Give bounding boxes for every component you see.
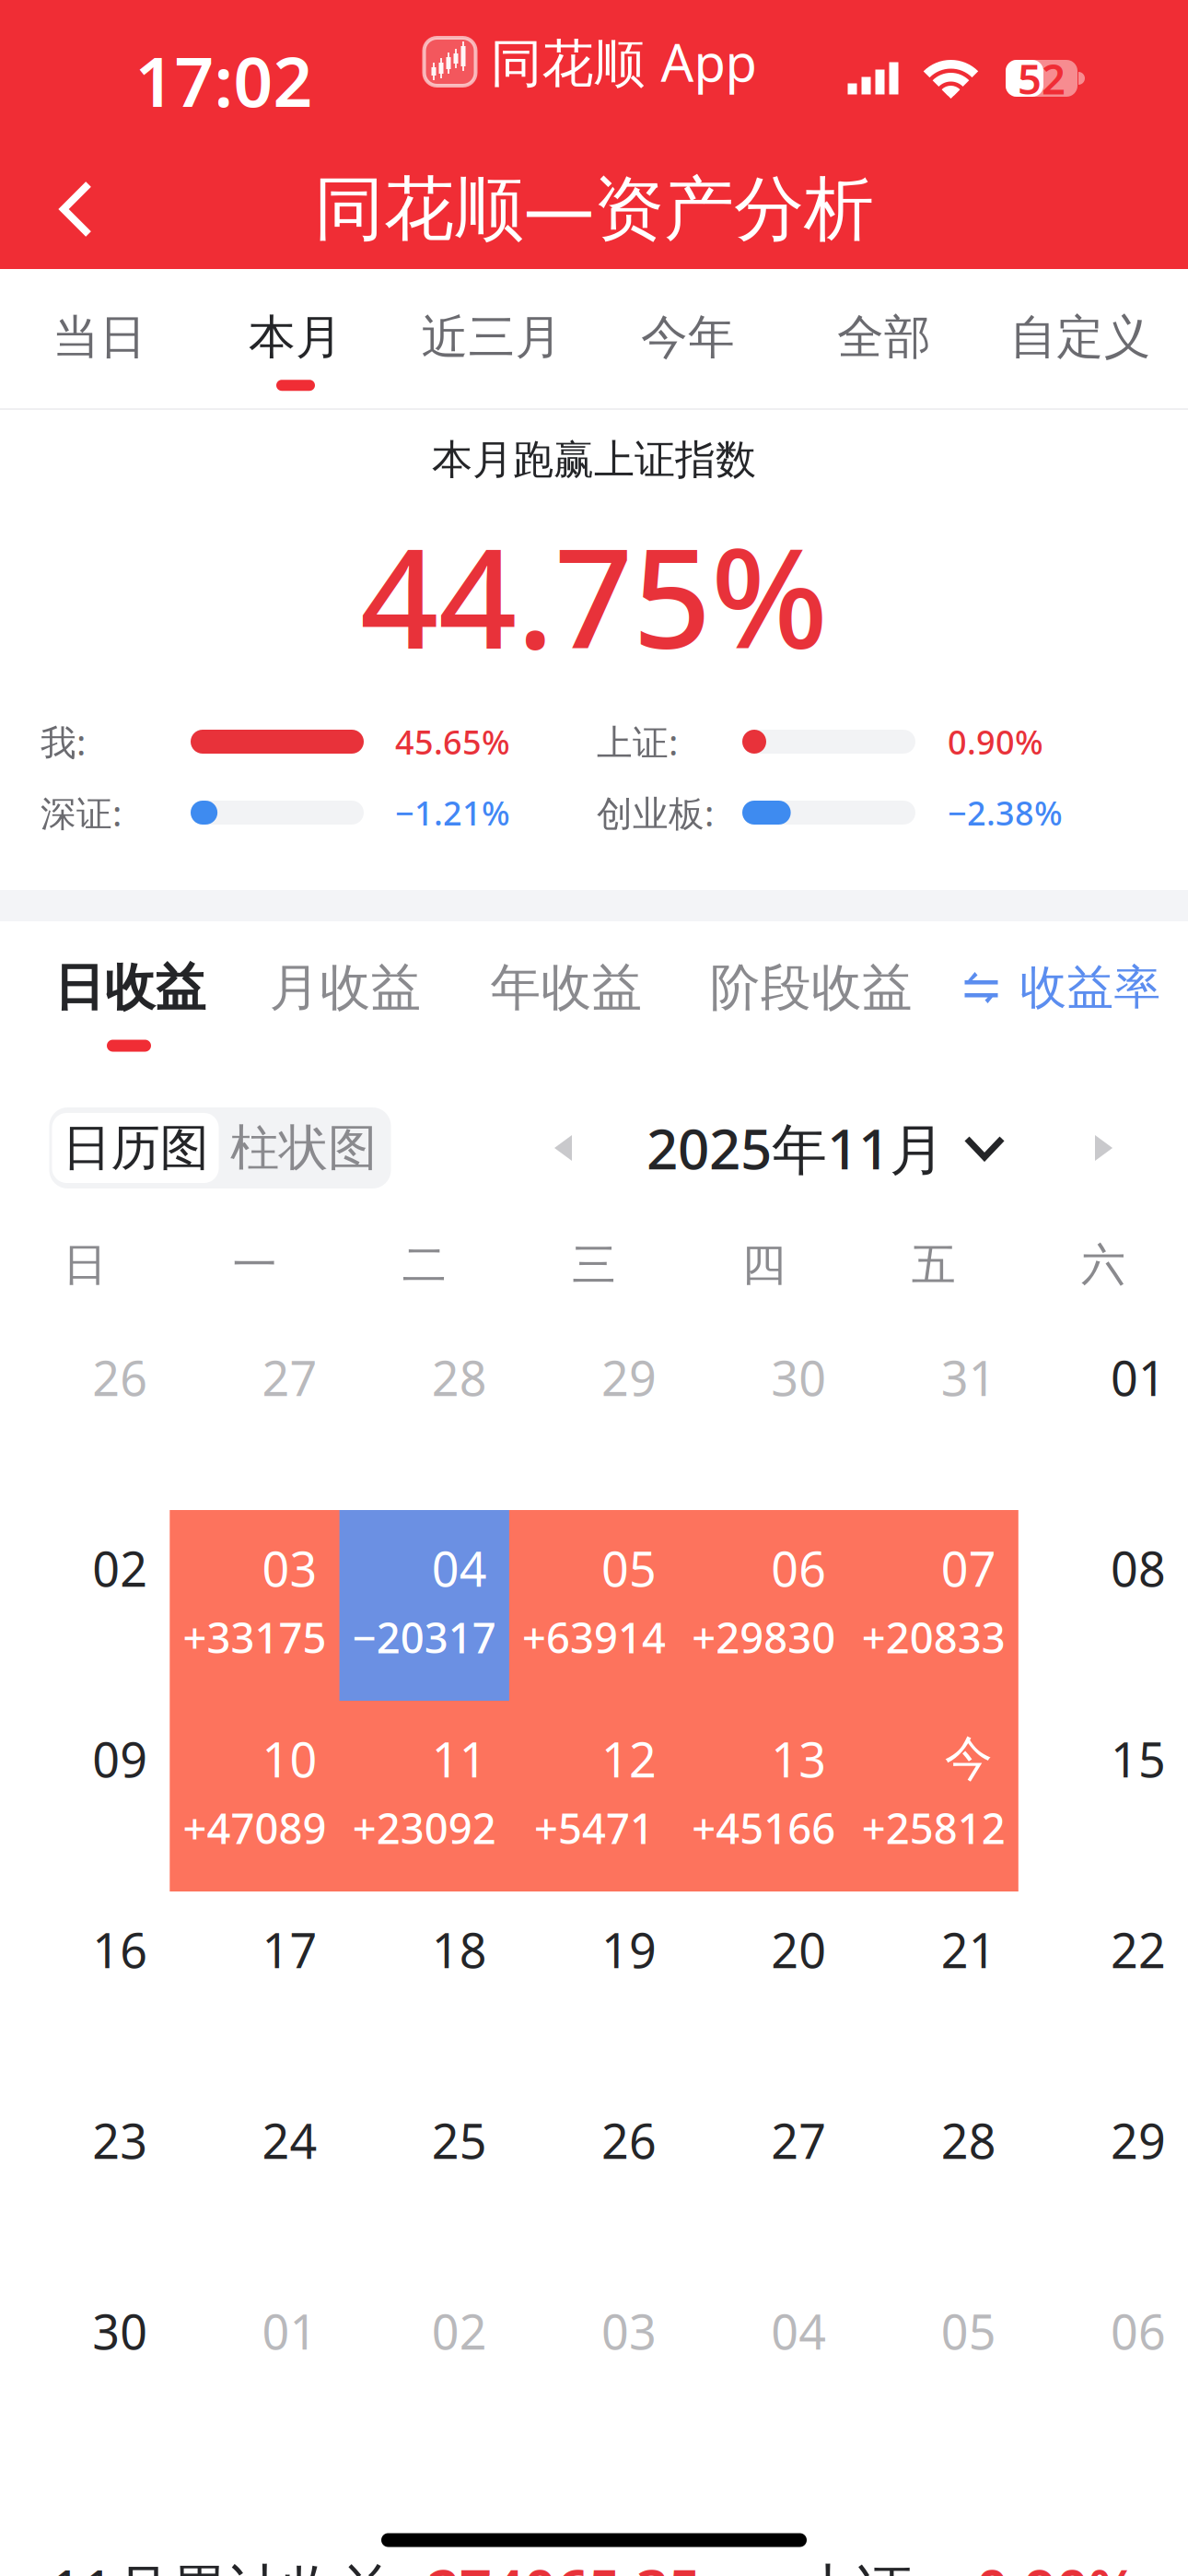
- staticText: 44.75%: [360, 504, 828, 686]
- staticText: 29: [601, 1346, 657, 1409]
- staticText: 06: [1111, 2299, 1166, 2363]
- staticText: 同花顺—资产分析: [314, 160, 874, 253]
- staticText: 09: [92, 1727, 148, 1791]
- button[interactable]: 近三月: [394, 269, 589, 409]
- staticText: 23: [92, 2108, 148, 2172]
- staticText: 2025年11月: [646, 1111, 945, 1185]
- staticText: 25: [432, 2108, 487, 2172]
- staticText: 05: [601, 1536, 657, 1600]
- staticText: 01: [262, 2299, 317, 2363]
- staticText: 07: [941, 1536, 996, 1600]
- staticText: 04: [432, 1536, 487, 1600]
- staticText: 阶段收益: [710, 957, 913, 1019]
- staticText: 一: [233, 1238, 277, 1292]
- staticText: 深证:: [41, 789, 122, 836]
- staticText: 全部: [837, 309, 931, 366]
- staticText: 22: [1111, 1918, 1166, 1981]
- staticText: 当日: [52, 309, 146, 366]
- button[interactable]: 全部: [786, 269, 982, 409]
- staticText: 近三月: [421, 309, 562, 366]
- staticText: 17: [262, 1918, 317, 1981]
- staticText: 03: [262, 1536, 317, 1600]
- button[interactable]: 当日: [2, 269, 197, 409]
- staticText: 上证:: [800, 2551, 927, 2576]
- staticText: +25812: [862, 1800, 1005, 1856]
- staticText: 日: [63, 1238, 107, 1292]
- staticText: 13: [771, 1727, 826, 1791]
- staticText: 17:02: [135, 34, 313, 126]
- staticText: +47089: [183, 1800, 326, 1856]
- button[interactable]: 收益率: [974, 937, 1149, 1038]
- button[interactable]: 月收益: [267, 937, 424, 1038]
- staticText: 18: [432, 1918, 487, 1981]
- staticText: 今年: [641, 309, 735, 366]
- staticText: 19: [601, 1918, 657, 1981]
- staticText: +0.90%: [944, 2551, 1138, 2576]
- staticText: 本月跑赢上证指数: [432, 435, 756, 485]
- staticText: 31: [941, 1346, 996, 1409]
- staticText: 28: [941, 2108, 996, 2172]
- staticText: 29: [1111, 2108, 1166, 2172]
- button[interactable]: Back: [6, 139, 145, 279]
- staticText: 我:: [41, 718, 86, 765]
- button[interactable]: 阶段收益: [710, 937, 913, 1038]
- staticText: 26: [92, 1346, 148, 1409]
- staticText: 45.65%: [395, 720, 510, 764]
- staticText: +274065.35: [395, 2551, 701, 2576]
- staticText: 26: [601, 2108, 657, 2172]
- staticText: 五: [911, 1238, 956, 1292]
- staticText: 02: [92, 1536, 148, 1600]
- button[interactable]: Previous month: [527, 1111, 600, 1185]
- staticText: 27: [771, 2108, 826, 2172]
- staticText: 06: [771, 1536, 826, 1600]
- staticText: 自定义: [1010, 309, 1151, 366]
- staticText: 0.90%: [948, 720, 1043, 764]
- staticText: 27: [262, 1346, 317, 1409]
- staticText: 月收益: [269, 957, 421, 1019]
- staticText: +5471: [534, 1800, 654, 1856]
- button[interactable]: 今年: [590, 269, 786, 409]
- button[interactable]: 柱状图: [219, 1113, 388, 1183]
- staticText: +20833: [862, 1609, 1005, 1665]
- button[interactable]: 自定义: [983, 269, 1178, 409]
- staticText: 柱状图: [230, 1118, 377, 1178]
- staticText: +63914: [522, 1609, 666, 1665]
- staticText: 三: [572, 1238, 616, 1292]
- staticText: 今: [945, 1729, 992, 1788]
- staticText: 日历图: [62, 1118, 209, 1178]
- staticText: 同花顺 App: [490, 27, 757, 96]
- staticText: 21: [941, 1918, 996, 1981]
- staticText: +45166: [692, 1800, 836, 1856]
- staticText: 16: [92, 1918, 148, 1981]
- staticText: 20: [771, 1918, 826, 1981]
- staticText: +23092: [353, 1800, 496, 1856]
- button[interactable]: 日历图: [52, 1113, 219, 1183]
- staticText: 04: [771, 2299, 826, 2363]
- staticText: 05: [941, 2299, 996, 2363]
- staticText: −1.21%: [395, 791, 510, 835]
- staticText: 年收益: [490, 957, 642, 1019]
- staticText: 02: [432, 2299, 487, 2363]
- button[interactable]: 日收益: [52, 942, 224, 1071]
- button[interactable]: 2025年11月: [646, 1104, 1006, 1192]
- button[interactable]: 年收益: [488, 937, 645, 1038]
- staticText: 30: [771, 1346, 826, 1409]
- button[interactable]: 本月: [198, 269, 393, 409]
- staticText: 52: [1018, 51, 1066, 106]
- staticText: 08: [1111, 1536, 1166, 1600]
- staticText: 11: [432, 1727, 487, 1791]
- staticText: 01: [1111, 1346, 1166, 1409]
- staticText: 收益率: [1020, 959, 1161, 1016]
- staticText: +29830: [692, 1609, 836, 1665]
- staticText: −20317: [353, 1609, 496, 1665]
- staticText: +33175: [183, 1609, 326, 1665]
- button[interactable]: Next month: [1067, 1111, 1141, 1185]
- staticText: 30: [92, 2299, 148, 2363]
- staticText: 上证:: [597, 718, 678, 765]
- staticText: 本月: [249, 309, 343, 366]
- staticText: 二: [402, 1238, 446, 1292]
- staticText: 03: [601, 2299, 657, 2363]
- staticText: 创业板:: [597, 789, 714, 836]
- staticText: 日收益: [54, 957, 206, 1019]
- staticText: 11月累计收益: [50, 2551, 395, 2576]
